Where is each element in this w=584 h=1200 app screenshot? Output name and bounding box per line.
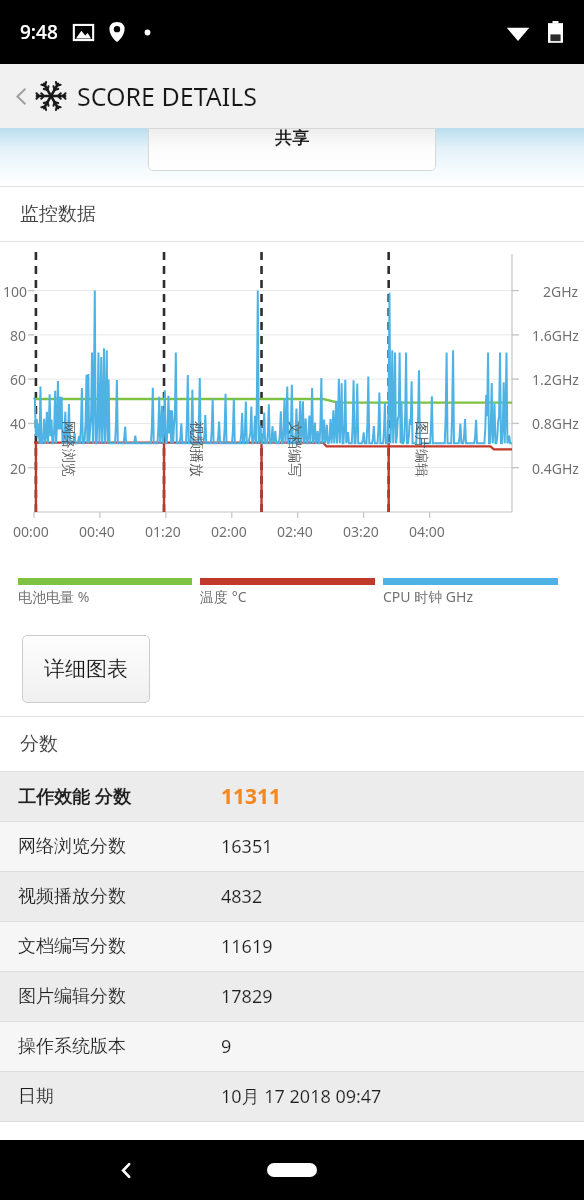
button[interactable]: 图片编辑分数: [0, 972, 584, 1021]
staticText: 100: [3, 282, 28, 301]
staticText: 40: [10, 414, 27, 433]
staticText: SCORE DETAILS: [77, 79, 258, 113]
staticText: 00:40: [79, 522, 115, 541]
button[interactable]: 详细图表: [22, 635, 150, 703]
button[interactable]: 视频播放分数: [0, 872, 584, 921]
staticText: 11311: [221, 782, 282, 811]
staticText: 10月 17 2018 09:47: [221, 1084, 382, 1109]
staticText: 17829: [221, 984, 273, 1009]
staticText: 16351: [221, 834, 273, 859]
staticText: 图片编辑分数: [18, 985, 126, 1008]
staticText: 80: [10, 326, 27, 345]
staticText: 日期: [18, 1085, 54, 1108]
staticText: 02:00: [211, 522, 247, 541]
staticText: 详细图表: [44, 656, 128, 682]
button[interactable]: Home: [267, 1163, 317, 1177]
staticText: 操作系统版本: [18, 1035, 126, 1058]
button[interactable]: 工作效能 分数: [0, 772, 584, 821]
staticText: 00:00: [13, 522, 49, 541]
staticText: 监控数据: [20, 202, 96, 226]
staticText: 文档编写分数: [18, 935, 126, 958]
staticText: 11619: [221, 934, 273, 959]
staticText: 共享: [275, 128, 309, 149]
staticText: 视频播放分数: [18, 885, 126, 908]
button[interactable]: Back: [6, 81, 36, 111]
staticText: 01:20: [145, 522, 181, 541]
button[interactable]: 网络浏览分数: [0, 822, 584, 871]
staticText: 网络浏览: [59, 421, 77, 477]
button[interactable]: Back: [106, 1150, 146, 1190]
staticText: 20: [10, 459, 27, 478]
staticText: 04:00: [409, 522, 445, 541]
staticText: 工作效能 分数: [18, 784, 131, 809]
staticText: 电池电量 %: [18, 587, 90, 606]
staticText: 9:48: [20, 19, 58, 45]
staticText: 1.2GHz: [532, 370, 579, 389]
staticText: 0.4GHz: [532, 459, 579, 478]
staticText: 图片编辑: [412, 421, 430, 477]
staticText: 1.6GHz: [532, 326, 579, 345]
staticText: CPU 时钟 GHz: [383, 587, 473, 606]
staticText: 2GHz: [543, 282, 579, 301]
button[interactable]: 日期: [0, 1072, 584, 1121]
staticText: 9: [221, 1034, 232, 1059]
staticText: 温度 °C: [200, 587, 247, 606]
button[interactable]: 文档编写分数: [0, 922, 584, 971]
staticText: 03:20: [343, 522, 379, 541]
button[interactable]: 操作系统版本: [0, 1022, 584, 1071]
staticText: 0.8GHz: [532, 414, 579, 433]
button[interactable]: 共享: [148, 128, 436, 171]
staticText: 视频播放: [187, 421, 205, 477]
staticText: 分数: [20, 732, 58, 756]
staticText: 网络浏览分数: [18, 835, 126, 858]
staticText: 60: [10, 370, 27, 389]
staticText: 02:40: [277, 522, 313, 541]
staticText: 文档编写: [285, 421, 303, 477]
staticText: 4832: [221, 884, 263, 909]
